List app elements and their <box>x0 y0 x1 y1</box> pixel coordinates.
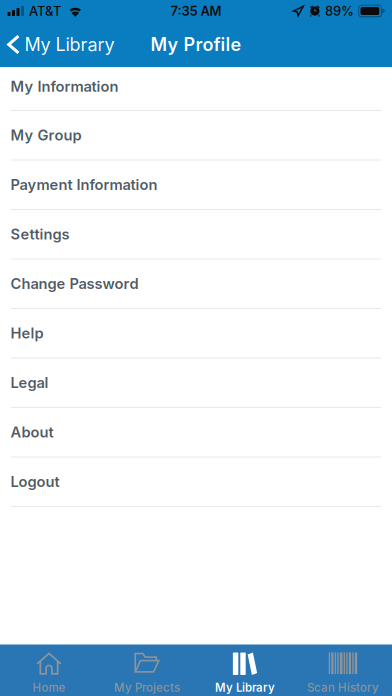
button[interactable]: Legal <box>0 358 392 408</box>
button[interactable]: About <box>0 408 392 457</box>
button[interactable]: Logout <box>0 457 392 507</box>
staticText: Change Password <box>11 275 139 293</box>
staticText: My Projects <box>114 681 180 694</box>
staticText: Logout <box>11 473 60 491</box>
button[interactable]: Settings <box>0 210 392 259</box>
staticText: My Library <box>24 34 114 55</box>
staticText: Home <box>32 681 65 694</box>
button[interactable]: Change Password <box>0 259 392 309</box>
staticText: Scan History <box>307 681 379 694</box>
button[interactable]: Scan History <box>294 644 392 696</box>
staticText: My Library <box>215 681 275 694</box>
button[interactable]: Help <box>0 309 392 358</box>
staticText: My Profile <box>150 34 241 55</box>
button[interactable]: My Library <box>196 644 294 696</box>
staticText: Payment Information <box>11 176 158 194</box>
staticText: About <box>11 423 54 441</box>
staticText: 7:35 AM <box>170 3 221 19</box>
button[interactable]: Payment Information <box>0 160 392 210</box>
staticText: Help <box>11 324 44 342</box>
button[interactable]: My Group <box>0 111 392 160</box>
staticText: AT&T <box>29 3 61 19</box>
button[interactable]: My Information <box>0 67 392 111</box>
button[interactable]: My Projects <box>98 644 196 696</box>
staticText: My Group <box>11 126 82 144</box>
button[interactable]: My Library <box>0 22 122 66</box>
button[interactable]: Home <box>0 644 98 696</box>
staticText: Settings <box>11 225 70 243</box>
staticText: 89% <box>325 3 354 19</box>
staticText: My Information <box>11 78 119 95</box>
staticText: Legal <box>11 374 49 392</box>
